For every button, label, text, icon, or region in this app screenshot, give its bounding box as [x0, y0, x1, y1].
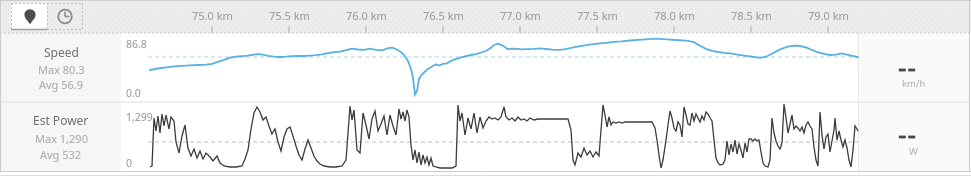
staticText: Avg 56.9: [39, 77, 84, 92]
staticText: 86.8: [126, 37, 147, 51]
staticText: 75.5 km: [269, 8, 310, 23]
button[interactable]: [11, 3, 47, 30]
staticText: 77.0 km: [500, 8, 541, 23]
staticText: Speed: [44, 44, 79, 60]
staticText: 1,299: [126, 110, 153, 124]
staticText: Max 80.3: [38, 62, 85, 77]
staticText: 76.5 km: [423, 8, 464, 23]
staticText: Avg 532: [40, 147, 82, 162]
staticText: 77.5 km: [577, 8, 618, 23]
button[interactable]: [47, 3, 83, 30]
staticText: 76.0 km: [346, 8, 387, 23]
staticText: 0.0: [126, 86, 141, 100]
staticText: Est Power: [33, 112, 89, 128]
staticText: 79.0 km: [808, 8, 849, 23]
staticText: W: [909, 145, 918, 158]
staticText: 75.0 km: [192, 8, 233, 23]
staticText: 78.0 km: [654, 8, 695, 23]
staticText: Max 1,290: [35, 131, 88, 146]
staticText: 0: [126, 156, 133, 170]
staticText: km/h: [902, 77, 926, 90]
staticText: 78.5 km: [731, 8, 772, 23]
